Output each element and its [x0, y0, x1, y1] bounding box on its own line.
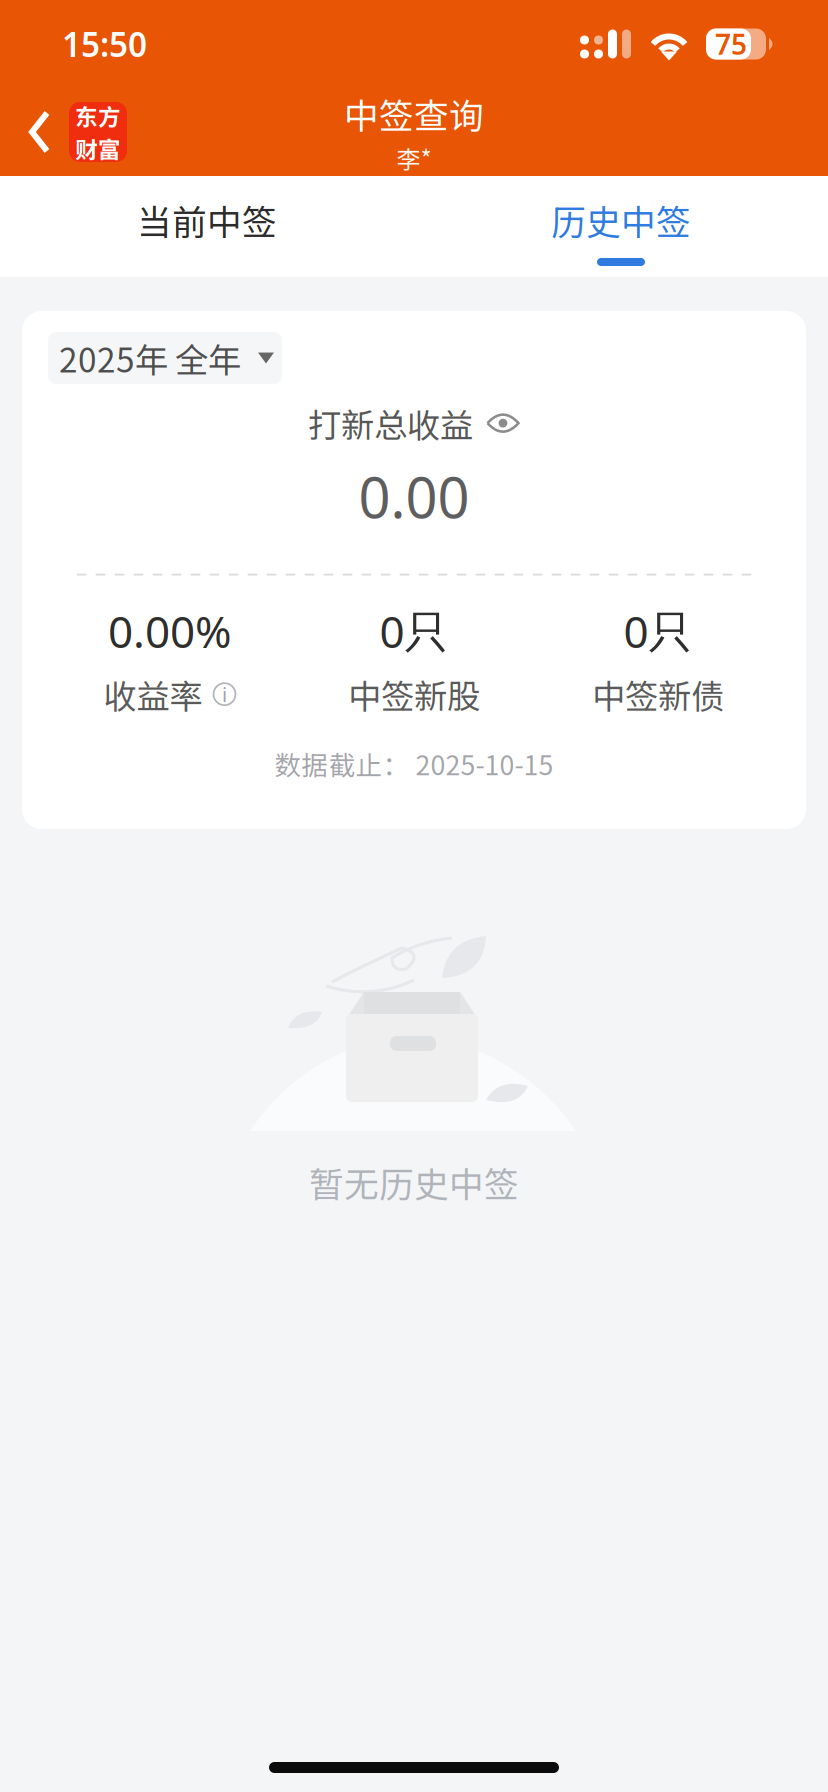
staticText: 15:50	[62, 22, 147, 66]
staticText: 当前中签	[137, 195, 277, 245]
staticText: 数据截止： 2025-10-15	[274, 744, 553, 783]
staticText: 0.00	[358, 459, 469, 534]
staticText: 收益率	[103, 670, 202, 718]
button[interactable]: Back	[0, 90, 143, 174]
staticText: 暂无历史中签	[309, 1157, 519, 1207]
staticText: 东方	[75, 99, 121, 132]
staticText: 李*	[396, 141, 431, 175]
button[interactable]: 当前中签	[0, 176, 414, 277]
button[interactable]: 历史中签	[414, 176, 828, 277]
staticText: 2025年 全年	[59, 334, 241, 382]
staticText: 0只	[379, 602, 448, 660]
staticText: 中签新股	[348, 670, 480, 718]
staticText: 中签查询	[344, 88, 484, 139]
staticText: 财富	[75, 132, 121, 165]
staticText: 0.00%	[108, 602, 232, 660]
button[interactable]: 2025年 全年	[48, 332, 282, 384]
staticText: 历史中签	[551, 195, 691, 245]
staticText: 中签新债	[592, 670, 724, 718]
staticText: i	[222, 681, 227, 707]
staticText: 0只	[623, 602, 692, 660]
staticText: 打新总收益	[308, 399, 473, 447]
staticText: 75	[715, 25, 747, 63]
